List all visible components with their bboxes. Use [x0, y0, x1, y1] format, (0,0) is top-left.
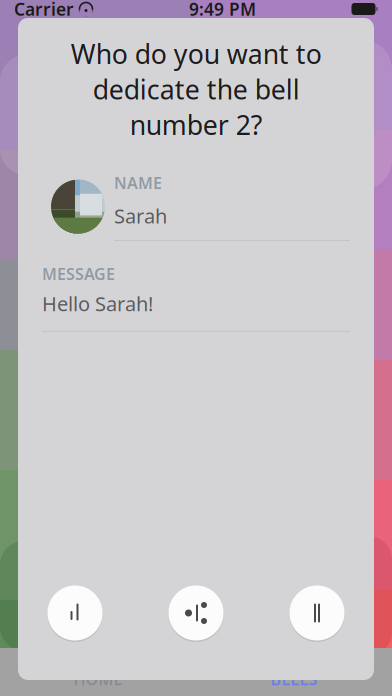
button[interactable]: Share: [165, 582, 227, 644]
staticText: Hello Sarah!: [42, 290, 153, 317]
staticText: HOME: [73, 668, 122, 690]
staticText: Sarah: [114, 202, 167, 229]
button[interactable]: Choose photo: [42, 176, 114, 238]
staticText: MESSAGE: [42, 263, 115, 284]
staticText: NAME: [114, 172, 162, 193]
button[interactable]: Confirm: [44, 582, 106, 644]
staticText: Carrier: [14, 0, 74, 20]
staticText: 9:49 PM: [189, 0, 256, 20]
staticText: Who do you want to dedicate the bell num…: [70, 36, 321, 142]
staticText: BELLS: [270, 668, 317, 690]
button[interactable]: Cancel: [286, 582, 348, 644]
